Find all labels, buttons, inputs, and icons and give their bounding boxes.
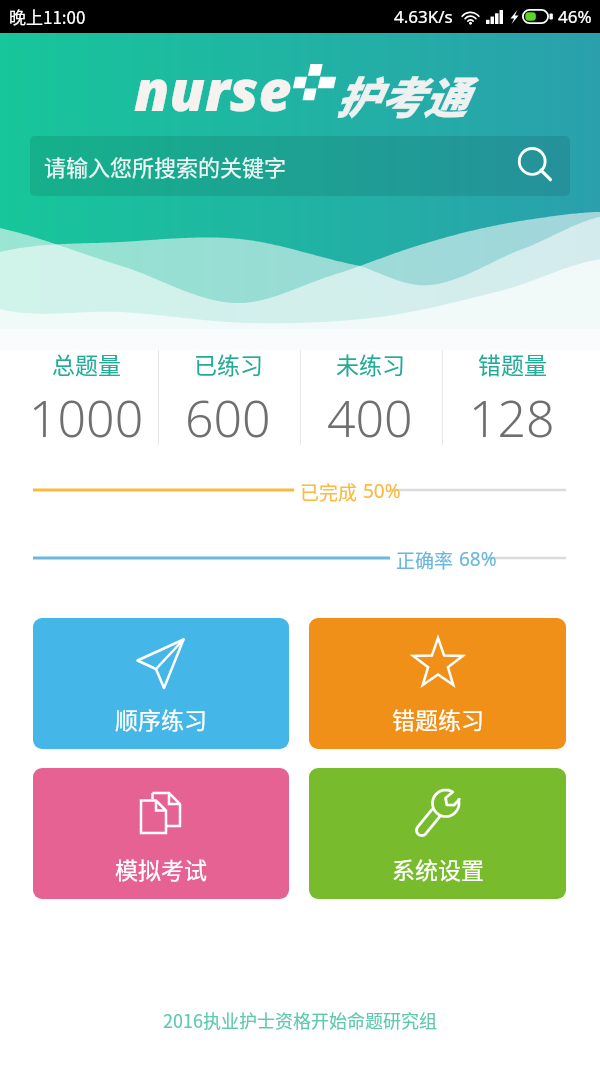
button[interactable]: 顺序练习 [33, 618, 289, 749]
staticText: 128 [469, 384, 555, 447]
staticText: 已完成 [300, 478, 358, 502]
staticText: 总题量 [52, 347, 121, 380]
button[interactable]: 模拟考试 [33, 768, 289, 899]
button[interactable]: 系统设置 [309, 768, 566, 899]
staticText: 晚上11:00 [9, 4, 86, 29]
staticText: 未练习 [336, 347, 405, 380]
staticText: 模拟考试 [115, 852, 207, 885]
staticText: 600 [185, 384, 271, 447]
other: Search [517, 147, 555, 185]
button[interactable]: 错题练习 [309, 618, 566, 749]
staticText: 已练习 [194, 347, 263, 380]
staticText: 正确率 [396, 546, 454, 570]
staticText: 46% [558, 5, 592, 28]
button[interactable]: 请输入您所搜索的关键字 [30, 136, 570, 196]
staticText: 系统设置 [392, 852, 484, 885]
staticText: 2016执业护士资格开始命题研究组 [0, 1007, 600, 1033]
staticText: 顺序练习 [115, 702, 207, 735]
staticText: 错题练习 [392, 702, 484, 735]
staticText: 4.63K/s [394, 5, 453, 28]
staticText: 1000 [29, 384, 144, 447]
staticText: 护考通 [335, 63, 467, 127]
staticText: 请输入您所搜索的关键字 [44, 150, 287, 182]
staticText: 错题量 [478, 347, 547, 380]
staticText: 50% [363, 478, 401, 502]
staticText: nurse [134, 50, 292, 128]
staticText: 68% [459, 546, 497, 570]
staticText: 400 [327, 384, 413, 447]
